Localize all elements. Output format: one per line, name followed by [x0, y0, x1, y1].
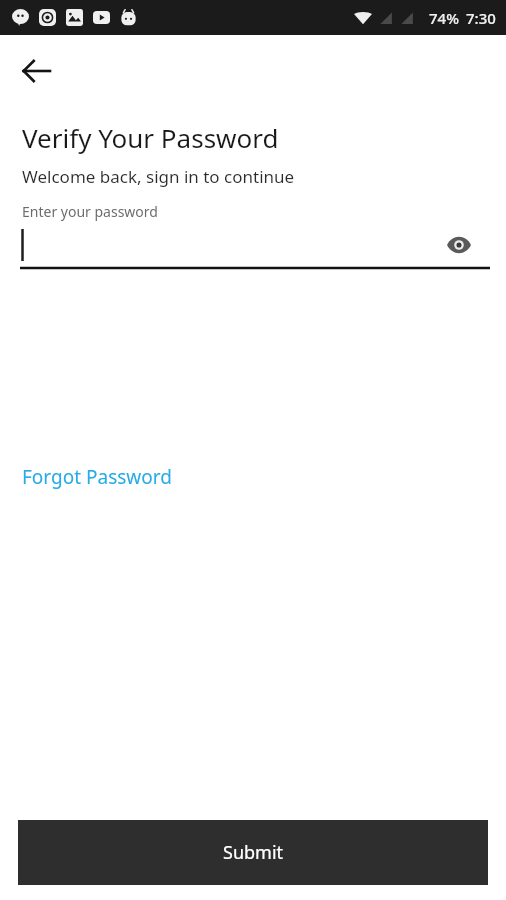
button[interactable]: Back — [10, 45, 62, 97]
button[interactable]: Show password — [444, 230, 474, 260]
staticText: 7:30 — [466, 8, 496, 28]
button[interactable]: Show password — [20, 221, 490, 269]
staticText: Welcome back, sign in to continue — [22, 165, 295, 188]
button[interactable]: Forgot Password — [18, 459, 176, 495]
button[interactable]: Submit — [18, 820, 488, 885]
staticText: Submit — [223, 840, 284, 865]
staticText: Enter your password — [22, 202, 158, 221]
staticText: 74% — [429, 8, 459, 28]
staticText: Verify Your Password — [22, 120, 279, 155]
staticText: Forgot Password — [22, 464, 172, 490]
